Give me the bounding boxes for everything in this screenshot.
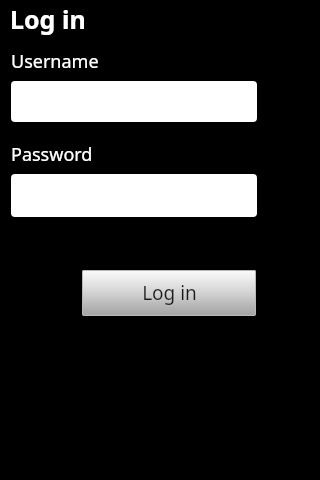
staticText: Log in [142,280,197,306]
button[interactable] [11,81,257,122]
staticText: Log in [10,2,86,36]
button[interactable]: Log in [82,270,256,316]
staticText: Password [11,142,93,167]
button[interactable] [11,174,257,217]
staticText: Username [11,49,99,74]
